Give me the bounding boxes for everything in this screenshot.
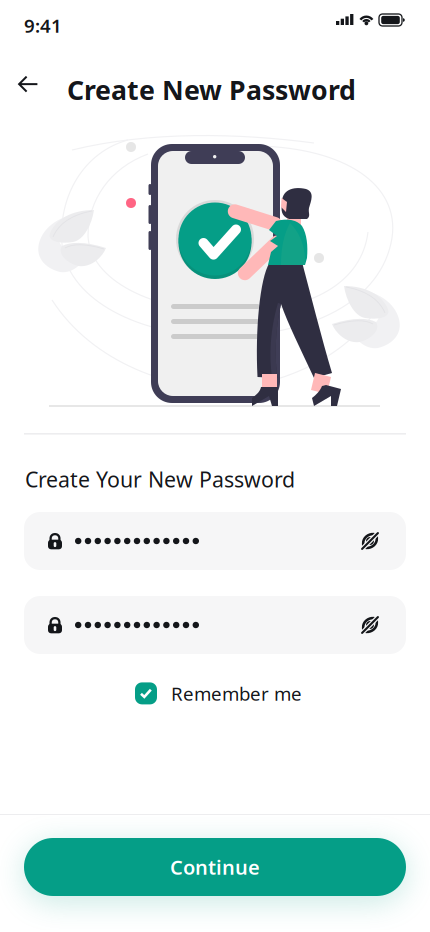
button[interactable]: Back — [8, 64, 48, 104]
button[interactable]: Remember me — [135, 681, 302, 706]
button[interactable]: Show password — [354, 525, 386, 557]
staticText: Create New Password — [67, 72, 356, 107]
staticText: Continue — [170, 854, 260, 880]
staticText: 9:41 — [24, 13, 62, 38]
button[interactable]: Show password — [354, 609, 386, 641]
staticText: Remember me — [171, 681, 302, 706]
staticText: Create Your New Password — [25, 465, 295, 493]
button[interactable]: Continue — [24, 838, 406, 896]
